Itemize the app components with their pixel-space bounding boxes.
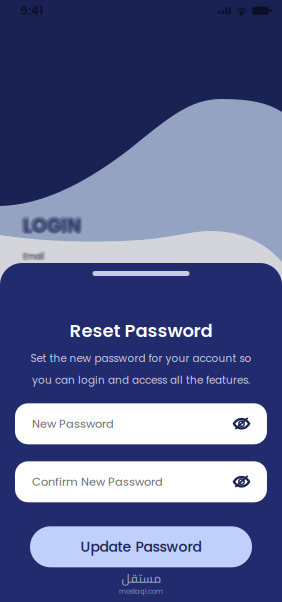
staticText: Email (22, 250, 43, 261)
staticText: you can login and access all the feature… (32, 373, 250, 387)
staticText: LOGIN (24, 214, 82, 240)
staticText: Email (22, 251, 43, 263)
staticText: مستقل (121, 567, 161, 590)
staticText: Email (23, 252, 44, 263)
button[interactable]: Confirm New Password (15, 461, 267, 502)
staticText: Confirm New Password (32, 474, 163, 490)
staticText: mostaql.com (119, 587, 163, 596)
staticText: LOGIN (22, 214, 80, 240)
staticText: LOGIN (24, 214, 82, 240)
staticText: Set the new password for your account so (30, 351, 251, 366)
staticText: Email (24, 251, 45, 263)
staticText: 9:41 (20, 2, 43, 19)
staticText: Email (23, 252, 44, 263)
staticText: Email (24, 250, 45, 261)
staticText: LOGIN (24, 213, 82, 239)
staticText: Email (25, 250, 46, 261)
staticText: LOGIN (23, 211, 81, 237)
staticText: Update Password (80, 537, 201, 557)
staticText: LOGIN (23, 214, 81, 240)
staticText: LOGIN (24, 211, 82, 237)
staticText: LOGIN (21, 211, 79, 237)
button[interactable]: New Password (15, 403, 267, 444)
staticText: LOGIN (22, 214, 80, 240)
staticText: Email (21, 251, 42, 262)
staticText: LOGIN (20, 213, 78, 239)
staticText: Reset Password (69, 318, 212, 343)
staticText: Email (22, 252, 43, 263)
staticText: Email (23, 250, 44, 261)
staticText: Email (23, 251, 44, 262)
staticText: Email (21, 250, 42, 261)
staticText: LOGIN (20, 212, 78, 238)
staticText: New Password (32, 416, 114, 432)
button[interactable]: Update Password (30, 526, 252, 567)
staticText: Email (24, 251, 45, 262)
staticText: LOGIN (26, 212, 84, 238)
staticText: LOGIN (23, 213, 81, 239)
